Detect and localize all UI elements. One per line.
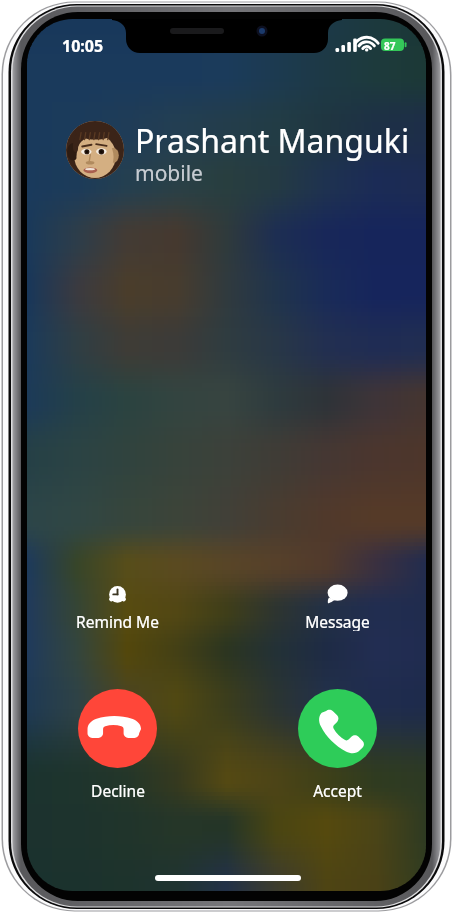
- staticText: Remind Me: [76, 611, 159, 631]
- button[interactable]: Accept: [292, 689, 382, 805]
- staticText: mobile: [135, 159, 203, 188]
- staticText: Message: [305, 611, 370, 631]
- staticText: 87: [384, 39, 396, 53]
- staticText: Accept: [313, 780, 362, 801]
- staticText: Prashant Manguki: [135, 119, 410, 163]
- button[interactable]: Decline: [72, 689, 162, 805]
- button[interactable]: Send a message: [282, 583, 392, 631]
- staticText: Decline: [91, 780, 145, 801]
- button[interactable]: Remind me later: [62, 583, 172, 631]
- staticText: 10:05: [62, 35, 104, 57]
